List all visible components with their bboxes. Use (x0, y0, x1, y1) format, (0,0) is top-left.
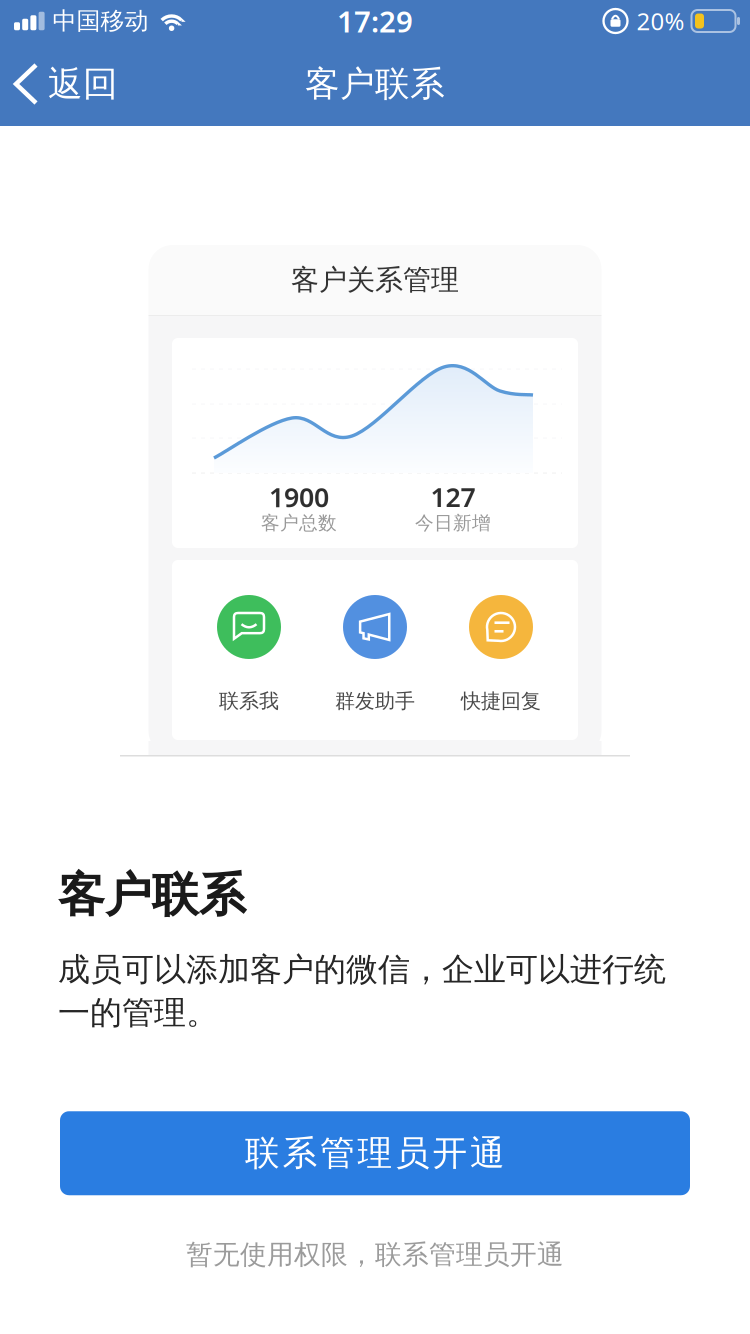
button[interactable]: 联系管理员开通 (60, 1111, 690, 1195)
staticText: 客户联系 (305, 63, 445, 105)
staticText: 1900 (269, 479, 329, 515)
staticText: 20% (636, 5, 684, 37)
staticText: 联系我 (219, 689, 279, 713)
staticText: 客户总数 (261, 511, 337, 534)
staticText: 127 (430, 479, 475, 515)
button[interactable]: 群发助手 (312, 560, 438, 740)
staticText: 暂无使用权限，联系管理员开通 (186, 1238, 564, 1271)
staticText: 快捷回复 (461, 689, 541, 713)
staticText: 17:29 (337, 1, 413, 40)
staticText: 返回 (48, 63, 118, 105)
staticText: 成员可以添加客户的微信，企业可以进行统 一的管理。 (58, 950, 666, 1032)
staticText: 今日新增 (415, 511, 491, 534)
staticText: 联系管理员开通 (245, 1132, 505, 1175)
staticText: 客户联系 (58, 866, 246, 924)
staticText: 中国移动 (53, 6, 149, 36)
button[interactable]: 快捷回复 (438, 560, 564, 740)
button[interactable]: 联系我 (186, 560, 312, 740)
staticText: 群发助手 (335, 689, 415, 713)
button[interactable]: 返回 (0, 63, 118, 105)
staticText: 客户关系管理 (291, 263, 459, 297)
